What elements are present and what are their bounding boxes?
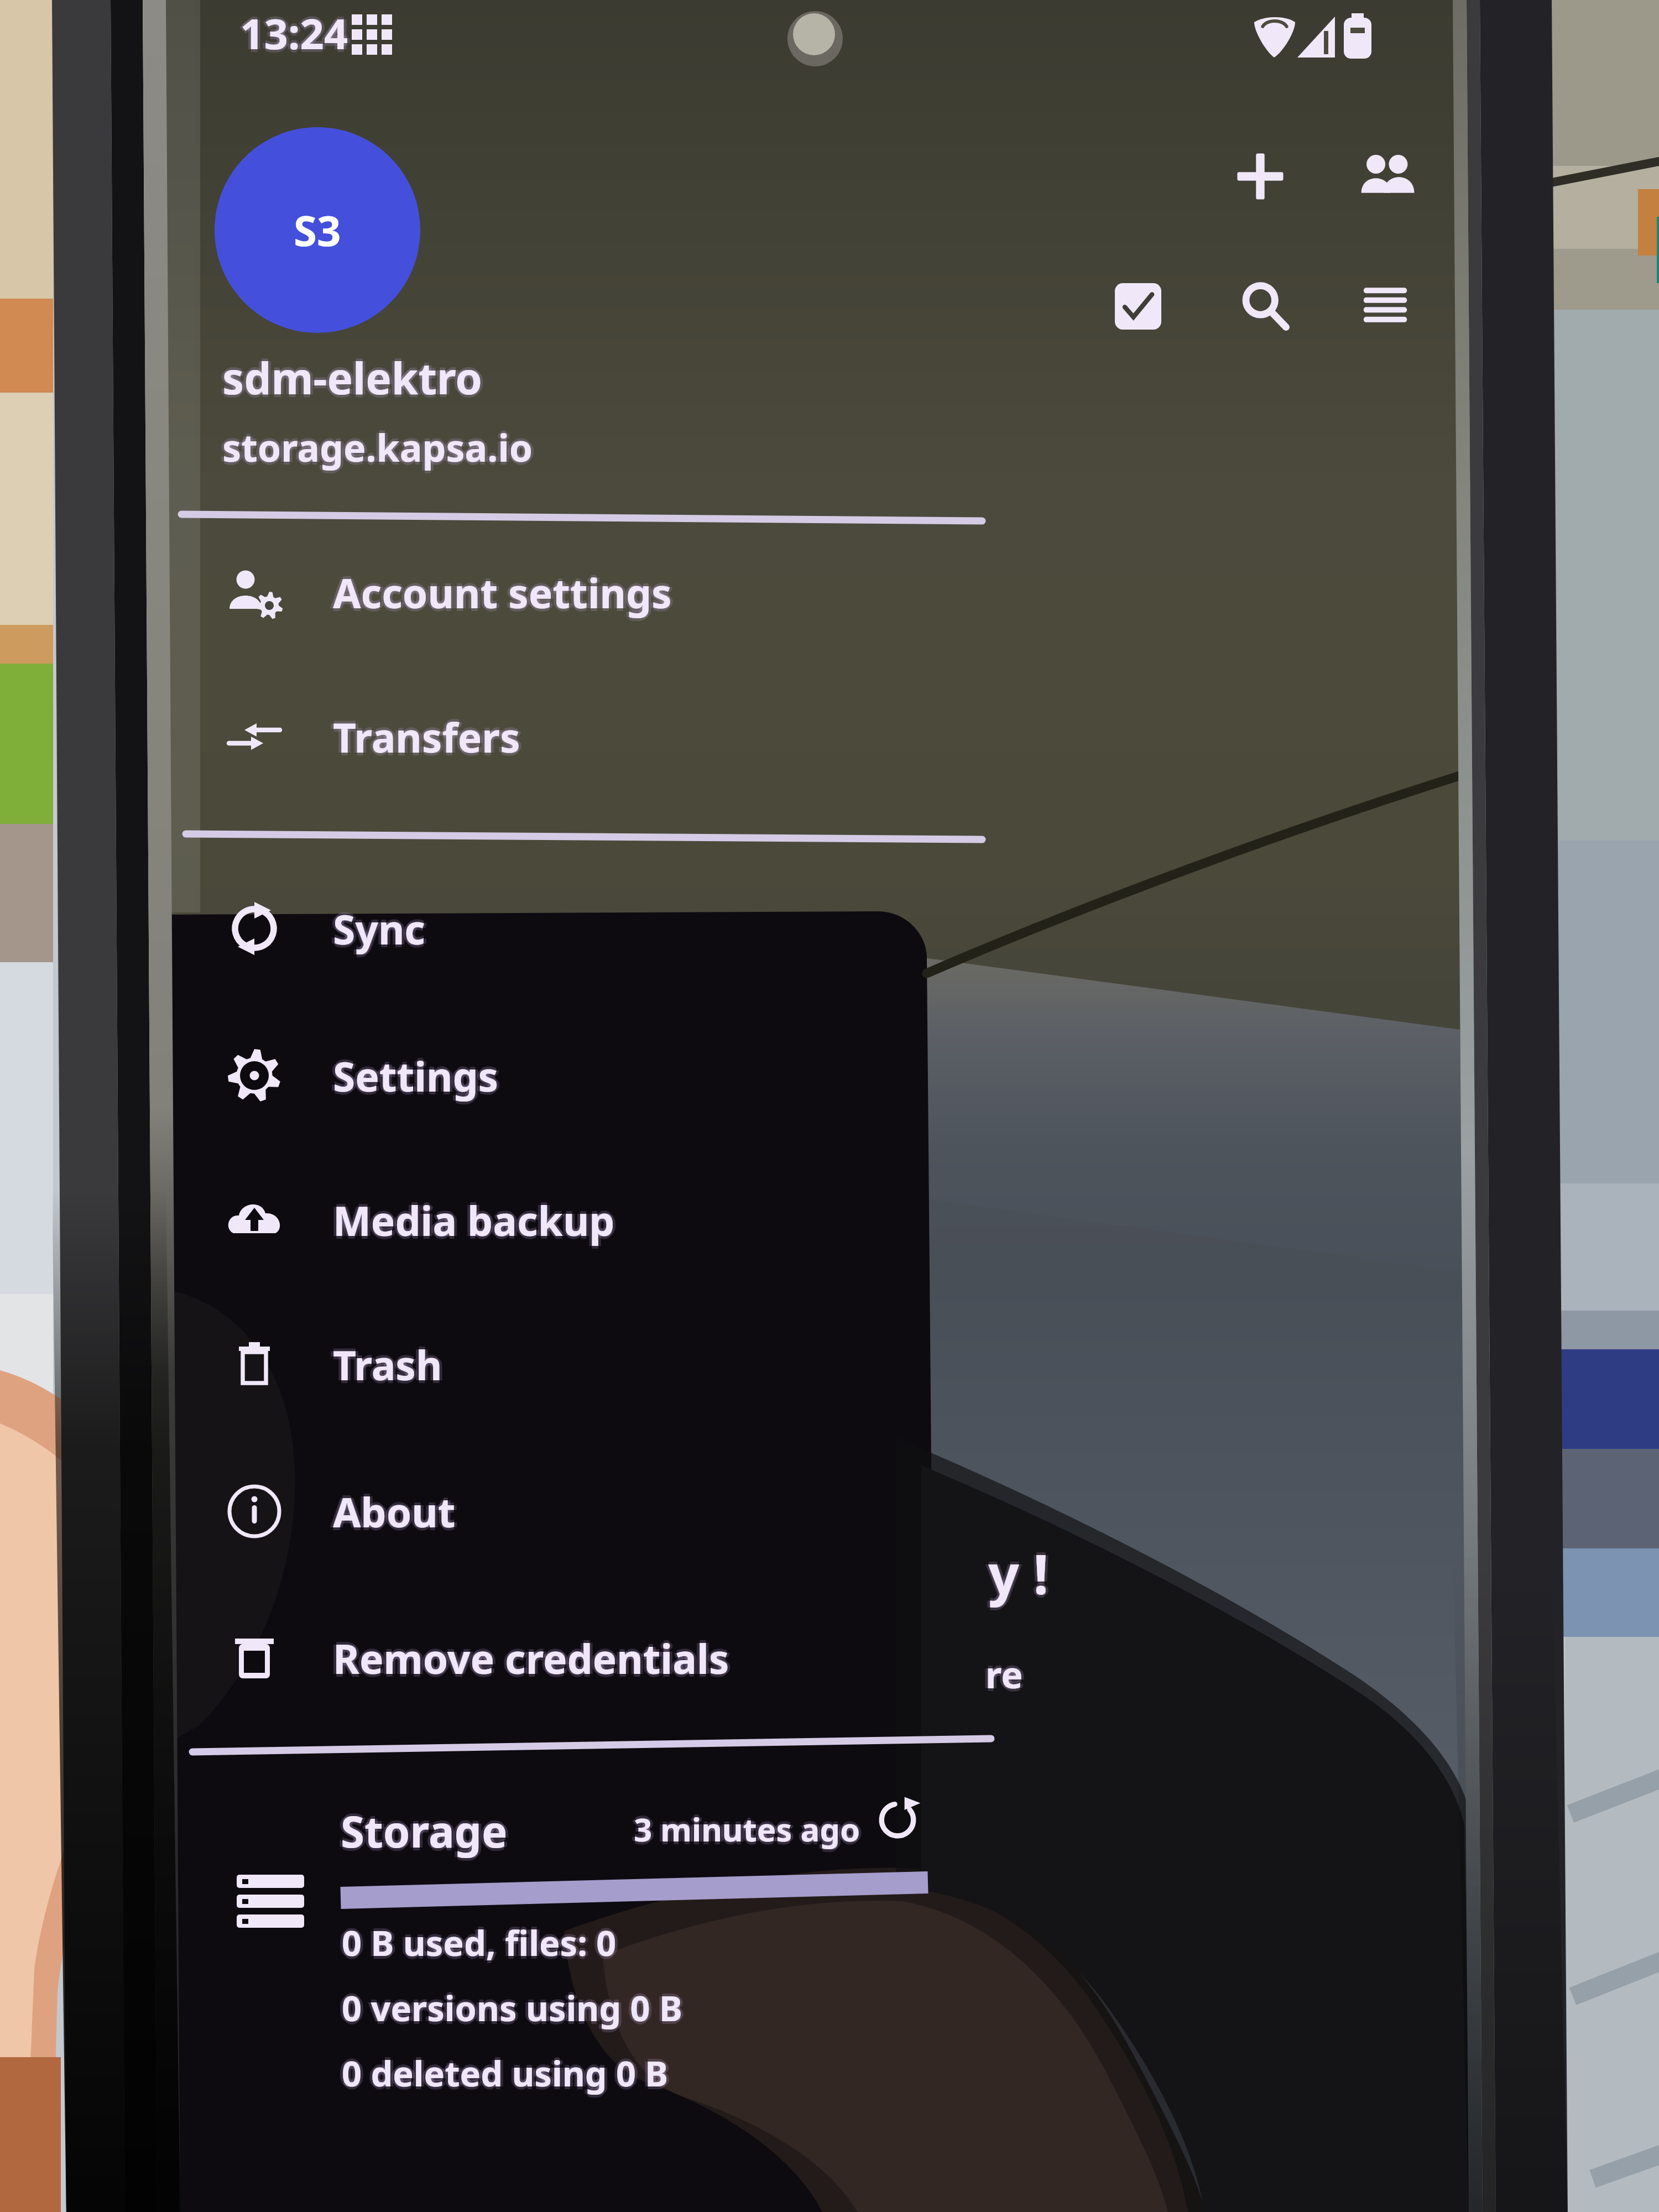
button[interactable]: Refresh storage: [873, 1795, 922, 1845]
staticText: re: [985, 1652, 1023, 1702]
staticText: Remove credentials: [333, 1628, 729, 1683]
staticText: S3: [294, 201, 341, 259]
staticText: storage.kapsa.io: [222, 419, 533, 470]
staticText: Remove credentials: [330, 1631, 727, 1686]
staticText: y !: [988, 1536, 1049, 1610]
staticText: sdm-elektro: [222, 346, 483, 404]
staticText: storage.kapsa.io: [220, 421, 530, 473]
staticText: 0 versions using 0 B: [339, 1984, 680, 2032]
staticText: sdm-elektro: [222, 351, 483, 410]
staticText: Settings: [333, 1051, 499, 1106]
staticText: Media backup: [333, 1196, 615, 1250]
staticText: Account settings: [336, 565, 675, 620]
staticText: Transfers: [333, 712, 520, 767]
staticText: Media backup: [330, 1193, 612, 1248]
staticText: 0 versions using 0 B: [345, 1984, 685, 2032]
staticText: 0 versions using 0 B: [342, 1981, 682, 2029]
staticText: re: [988, 1649, 1026, 1699]
staticText: 0 deleted using 0 B: [342, 2049, 669, 2097]
staticText: re: [983, 1649, 1020, 1699]
staticText: Sync: [333, 904, 426, 959]
button[interactable]: Account avatar S3: [215, 127, 420, 333]
staticText: Trash: [330, 1337, 440, 1392]
staticText: Sync: [336, 901, 429, 956]
staticText: About: [336, 1484, 458, 1539]
button[interactable]: Shared with you: [1352, 143, 1421, 212]
staticText: 3 minutes ago: [634, 1804, 860, 1848]
staticText: Sync: [330, 901, 423, 956]
button[interactable]: Select items: [1105, 273, 1171, 340]
staticText: 13:24: [240, 4, 348, 62]
staticText: sdm-elektro: [225, 348, 486, 407]
staticText: 0 B used, files: 0: [342, 1922, 617, 1969]
staticText: Trash: [333, 1334, 442, 1389]
staticText: Storage: [343, 1802, 510, 1860]
staticText: 13:24: [240, 7, 348, 65]
staticText: 3 minutes ago: [634, 1810, 860, 1854]
button[interactable]: Sync: [166, 861, 940, 996]
staticText: 0 deleted using 0 B: [339, 2049, 666, 2097]
button[interactable]: Settings: [166, 1008, 940, 1143]
staticText: About: [330, 1484, 453, 1539]
staticText: Storage: [341, 1804, 508, 1863]
staticText: Media backup: [333, 1193, 615, 1248]
staticText: About: [333, 1481, 456, 1536]
staticText: 3 minutes ago: [631, 1807, 858, 1851]
staticText: Storage: [341, 1802, 508, 1860]
staticText: sdm-elektro: [220, 348, 480, 407]
button[interactable]: Trash: [166, 1297, 940, 1432]
staticText: About: [333, 1484, 456, 1539]
staticText: storage.kapsa.io: [225, 421, 536, 473]
staticText: sdm-elektro: [222, 348, 483, 407]
staticText: Transfers: [336, 709, 523, 764]
staticText: re: [985, 1646, 1023, 1696]
staticText: Settings: [330, 1048, 496, 1103]
staticText: y !: [985, 1536, 1046, 1610]
staticText: 0 B used, files: 0: [339, 1919, 614, 1966]
staticText: storage.kapsa.io: [222, 424, 533, 476]
staticText: Account settings: [333, 568, 672, 623]
button[interactable]: About: [166, 1444, 940, 1579]
staticText: 0 versions using 0 B: [342, 1987, 682, 2034]
staticText: Settings: [333, 1048, 499, 1103]
button[interactable]: Add: [1223, 139, 1297, 213]
staticText: Transfers: [330, 709, 518, 764]
button[interactable]: Account settings: [166, 525, 940, 660]
button[interactable]: Search: [1232, 273, 1300, 341]
staticText: Remove credentials: [333, 1631, 729, 1686]
staticText: About: [333, 1487, 456, 1542]
staticText: Settings: [336, 1048, 502, 1103]
staticText: Sync: [333, 901, 426, 956]
staticText: Media backup: [333, 1190, 615, 1245]
staticText: 0 deleted using 0 B: [342, 2047, 669, 2094]
staticText: 0 B used, files: 0: [342, 1919, 617, 1966]
staticText: Trash: [333, 1337, 442, 1392]
staticText: Remove credentials: [333, 1634, 729, 1688]
staticText: 0 B used, files: 0: [342, 1916, 617, 1964]
staticText: 13:24: [240, 2, 348, 59]
button[interactable]: Sort: [1356, 275, 1415, 334]
staticText: Account settings: [333, 565, 672, 620]
staticText: re: [985, 1649, 1023, 1699]
button[interactable]: Transfers: [166, 669, 940, 804]
staticText: Media backup: [336, 1193, 618, 1248]
staticText: Account settings: [333, 562, 672, 617]
staticText: 0 B used, files: 0: [345, 1919, 619, 1966]
staticText: y !: [988, 1539, 1049, 1613]
staticText: 0 deleted using 0 B: [345, 2049, 671, 2097]
staticText: 3 minutes ago: [634, 1807, 860, 1851]
staticText: Storage: [338, 1802, 505, 1860]
staticText: 0 deleted using 0 B: [342, 2052, 669, 2100]
staticText: Account settings: [330, 565, 669, 620]
staticText: Remove credentials: [336, 1631, 732, 1686]
staticText: Sync: [333, 899, 426, 953]
staticText: Settings: [333, 1046, 499, 1100]
staticText: y !: [988, 1533, 1049, 1607]
staticText: Transfers: [333, 707, 520, 761]
staticText: Trash: [333, 1340, 442, 1395]
staticText: y !: [991, 1536, 1052, 1610]
staticText: Trash: [336, 1337, 445, 1392]
button[interactable]: Media backup: [166, 1152, 940, 1287]
button[interactable]: Remove credentials: [166, 1590, 940, 1725]
staticText: Storage: [341, 1799, 508, 1858]
